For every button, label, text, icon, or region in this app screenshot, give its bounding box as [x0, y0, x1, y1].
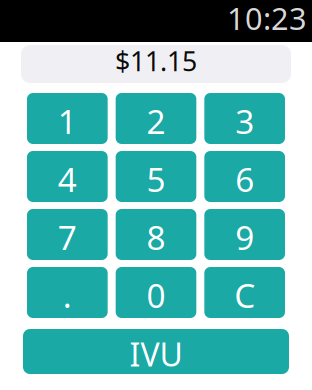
staticText: 4 — [58, 157, 77, 201]
button[interactable]: 7 — [27, 209, 108, 260]
staticText: 7 — [58, 215, 77, 259]
button[interactable]: IVU — [23, 329, 289, 374]
staticText: 2 — [146, 99, 165, 143]
staticText: 1 — [58, 99, 77, 143]
button[interactable]: 2 — [116, 93, 196, 144]
staticText: . — [63, 273, 72, 317]
button[interactable]: C — [204, 267, 285, 318]
button[interactable]: 6 — [204, 151, 285, 202]
staticText: 9 — [235, 215, 254, 259]
button[interactable]: 8 — [116, 209, 196, 260]
button[interactable]: 9 — [204, 209, 285, 260]
staticText: 5 — [146, 157, 165, 201]
staticText: 0 — [146, 273, 165, 317]
button[interactable]: 0 — [116, 267, 196, 318]
button[interactable]: 5 — [116, 151, 196, 202]
staticText: 10:23 — [227, 0, 307, 38]
staticText: C — [234, 273, 255, 317]
button[interactable]: 3 — [204, 93, 285, 144]
button[interactable]: 4 — [27, 151, 108, 202]
staticText: IVU — [129, 333, 182, 375]
staticText: $11.15 — [115, 43, 197, 79]
staticText: 8 — [146, 215, 165, 259]
staticText: 3 — [235, 99, 254, 143]
staticText: 6 — [235, 157, 254, 201]
button[interactable]: . — [27, 267, 108, 318]
button[interactable]: 1 — [27, 93, 108, 144]
